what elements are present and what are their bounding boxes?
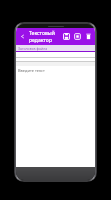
button[interactable]: Save	[61, 29, 71, 44]
button[interactable]: Back	[16, 30, 29, 43]
staticText: Текстовый	[29, 30, 55, 37]
staticText: Введите текст	[18, 68, 45, 73]
button[interactable]: Введите текст	[16, 66, 95, 167]
button[interactable]: New	[72, 29, 82, 44]
staticText: Заголовок файла	[18, 46, 48, 51]
button[interactable]: Delete	[83, 29, 93, 44]
button[interactable]: Заголовок файла	[16, 45, 95, 51]
staticText: редактор	[29, 37, 52, 44]
